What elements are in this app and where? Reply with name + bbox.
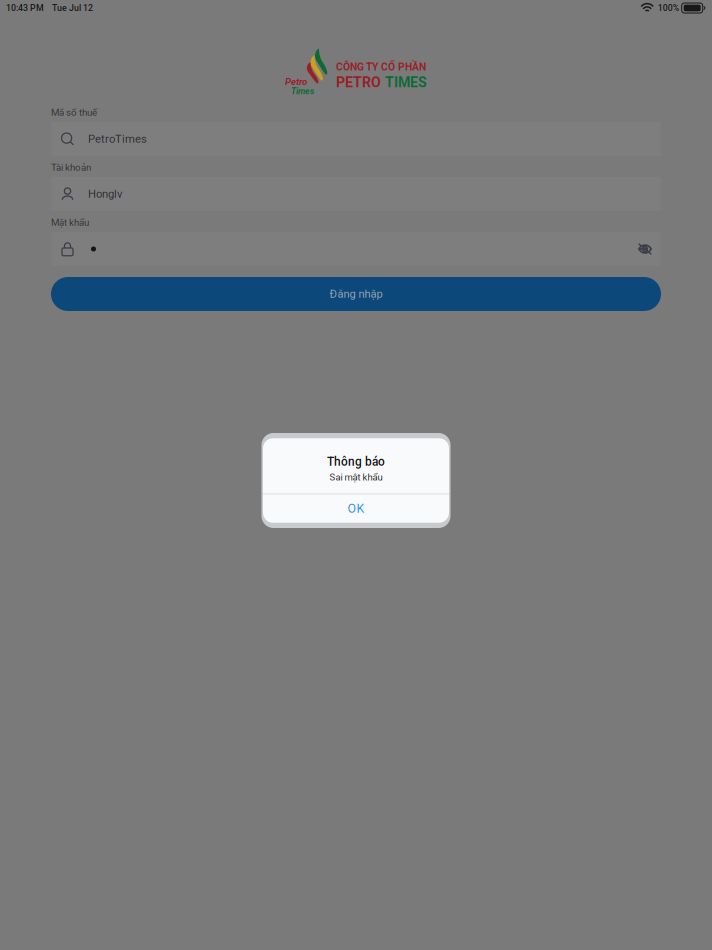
staticText: PETRO <box>336 74 381 91</box>
staticText: CÔNG TY CỔ PHẦN <box>336 61 426 73</box>
staticText: Đăng nhập <box>329 287 382 300</box>
staticText: Honglv <box>88 187 122 201</box>
staticText: TIMES <box>385 74 427 91</box>
staticText: Petro <box>285 76 307 87</box>
button[interactable]: PetroTimes <box>51 122 661 156</box>
staticText: Times <box>291 86 314 96</box>
staticText: Tue Jul 12 <box>52 3 93 13</box>
staticText: Mã số thuế <box>51 107 97 118</box>
staticText: PetroTimes <box>88 132 147 146</box>
button[interactable]: Honglv <box>51 177 661 211</box>
button[interactable] <box>51 232 661 266</box>
staticText: Tài khoản <box>51 162 91 173</box>
staticText: OK <box>347 501 364 516</box>
staticText: Sai mật khẩu <box>329 472 382 483</box>
staticText: 100% <box>658 3 679 13</box>
staticText: Mật khẩu <box>51 217 89 228</box>
button[interactable]: OK <box>263 494 449 523</box>
staticText: 10:43 PM <box>6 3 44 13</box>
staticText: Thông báo <box>327 455 385 469</box>
button[interactable]: Đăng nhập <box>51 277 661 311</box>
